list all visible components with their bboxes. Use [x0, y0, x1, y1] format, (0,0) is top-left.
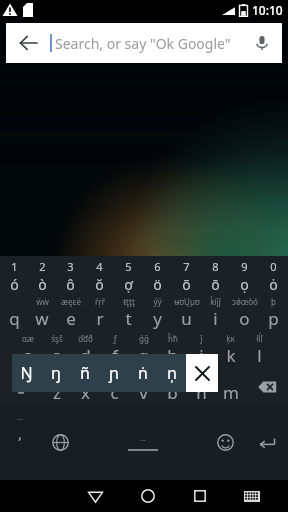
staticText: ɲ: [109, 362, 119, 384]
button[interactable]: 5: [114, 256, 143, 294]
staticText: k: [226, 344, 236, 367]
staticText: ƅɓ: [168, 370, 178, 381]
button[interactable]: Ŋ: [12, 354, 41, 392]
button[interactable]: łĺľ: [245, 331, 274, 368]
button[interactable]: Emoji: [205, 405, 245, 480]
button[interactable]: ẅẇ: [28, 294, 56, 331]
button[interactable]: ɳñŋṅņ: [187, 368, 216, 405]
button[interactable]: Voice search: [242, 23, 282, 63]
button[interactable]: Home: [122, 480, 174, 512]
staticText: q: [9, 307, 20, 330]
button[interactable]: 2: [28, 256, 56, 294]
button[interactable]: Enter: [245, 405, 288, 480]
staticText: ō: [211, 275, 220, 294]
staticText: ɔǿœòó: [232, 296, 258, 307]
button[interactable]: ŕŗř: [85, 294, 114, 331]
button[interactable]: ḱíįĵ: [201, 294, 230, 331]
staticText: w: [35, 307, 49, 330]
button[interactable]: 1: [0, 256, 28, 294]
button[interactable]: ďđð: [71, 331, 100, 368]
button[interactable]: q: [0, 294, 28, 331]
button[interactable]: ķĸ: [216, 331, 245, 368]
button[interactable]: ʉʊŲµʊ: [172, 294, 201, 331]
staticText: n: [196, 381, 207, 404]
button[interactable]: ǵğ: [129, 331, 158, 368]
button[interactable]: 8: [201, 256, 230, 294]
button[interactable]: æęɛë: [56, 294, 85, 331]
button[interactable]: Close: [186, 354, 218, 392]
staticText: æęɛë: [61, 296, 81, 307]
button[interactable]: Back: [6, 23, 50, 63]
button[interactable]: Back: [69, 480, 122, 512]
staticText: Search, or say "Ok Google": [55, 34, 231, 53]
button[interactable]: ṅ: [128, 354, 157, 392]
staticText: l: [257, 344, 262, 367]
staticText: ñ: [80, 362, 90, 384]
staticText: ņ: [167, 362, 177, 384]
staticText: Ŋ: [20, 362, 33, 384]
button[interactable]: 4: [85, 256, 114, 294]
button[interactable]: 3: [56, 256, 85, 294]
button[interactable]: 6: [143, 256, 172, 294]
staticText: u: [181, 307, 192, 330]
staticText: ḱíįĵ: [210, 296, 221, 307]
staticText: t: [125, 307, 132, 330]
button[interactable]: ɲ: [99, 354, 128, 392]
staticText: ọ: [240, 275, 249, 294]
staticText: d: [80, 344, 91, 367]
staticText: s: [52, 344, 61, 367]
button[interactable]: Switch keyboard: [226, 480, 278, 512]
button[interactable]: m: [216, 368, 245, 405]
button[interactable]: śşš: [42, 331, 71, 368]
staticText: ö: [153, 275, 162, 294]
staticText: y: [153, 307, 162, 330]
button[interactable]: ƅɓ: [158, 368, 187, 405]
button[interactable]: Backspace: [245, 368, 288, 405]
button[interactable]: ʋ: [129, 368, 158, 405]
button[interactable]: 7: [172, 256, 201, 294]
staticText: ýÿ: [153, 296, 162, 307]
staticText: ò: [38, 275, 47, 294]
button[interactable]: 9: [230, 256, 259, 294]
staticText: ƒ: [113, 333, 117, 344]
button[interactable]: Back: [6, 23, 282, 63]
staticText: čçċ: [109, 370, 121, 381]
staticText: 1: [11, 259, 18, 274]
button[interactable]: Recent apps: [174, 480, 226, 512]
staticText: ĥħ: [168, 333, 178, 344]
button[interactable]: ƒ: [100, 331, 129, 368]
staticText: ķĸ: [226, 333, 235, 344]
button[interactable]: ñ: [70, 354, 99, 392]
staticText: ɑæ: [22, 333, 34, 344]
staticText: ṅ: [138, 362, 148, 384]
button[interactable]: ýÿ: [143, 294, 172, 331]
button[interactable]: ŧţţţ: [114, 294, 143, 331]
button[interactable]: x: [71, 368, 100, 405]
staticText: v: [139, 381, 148, 404]
button[interactable]: Space: [80, 405, 205, 480]
staticText: f: [112, 344, 118, 367]
button[interactable]: Change language: [40, 405, 80, 480]
button[interactable]: Shift: [0, 368, 42, 405]
button[interactable]: čçċ: [100, 368, 129, 405]
staticText: ŕŗř: [95, 296, 105, 307]
button[interactable]: ɑæ: [14, 331, 42, 368]
button[interactable]: ŋ: [41, 354, 70, 392]
button[interactable]: ...: [0, 405, 40, 480]
staticText: 3: [67, 259, 74, 274]
staticText: ɳñŋṅņ: [189, 370, 214, 381]
staticText: z: [53, 381, 61, 404]
button[interactable]: ɔǿœòó: [230, 294, 259, 331]
button[interactable]: þ: [259, 294, 288, 331]
staticText: ʉʊŲµʊ: [174, 296, 200, 307]
button[interactable]: ĥħ: [158, 331, 187, 368]
staticText: h: [167, 344, 178, 367]
staticText: 10:10: [252, 2, 283, 18]
button[interactable]: 0: [259, 256, 288, 294]
button[interactable]: ʒƶǯž: [42, 368, 71, 405]
staticText: þ: [271, 296, 276, 307]
staticText: x: [81, 381, 90, 404]
button[interactable]: ņ: [157, 354, 186, 392]
button[interactable]: ĵ: [187, 331, 216, 368]
staticText: o: [239, 307, 250, 330]
